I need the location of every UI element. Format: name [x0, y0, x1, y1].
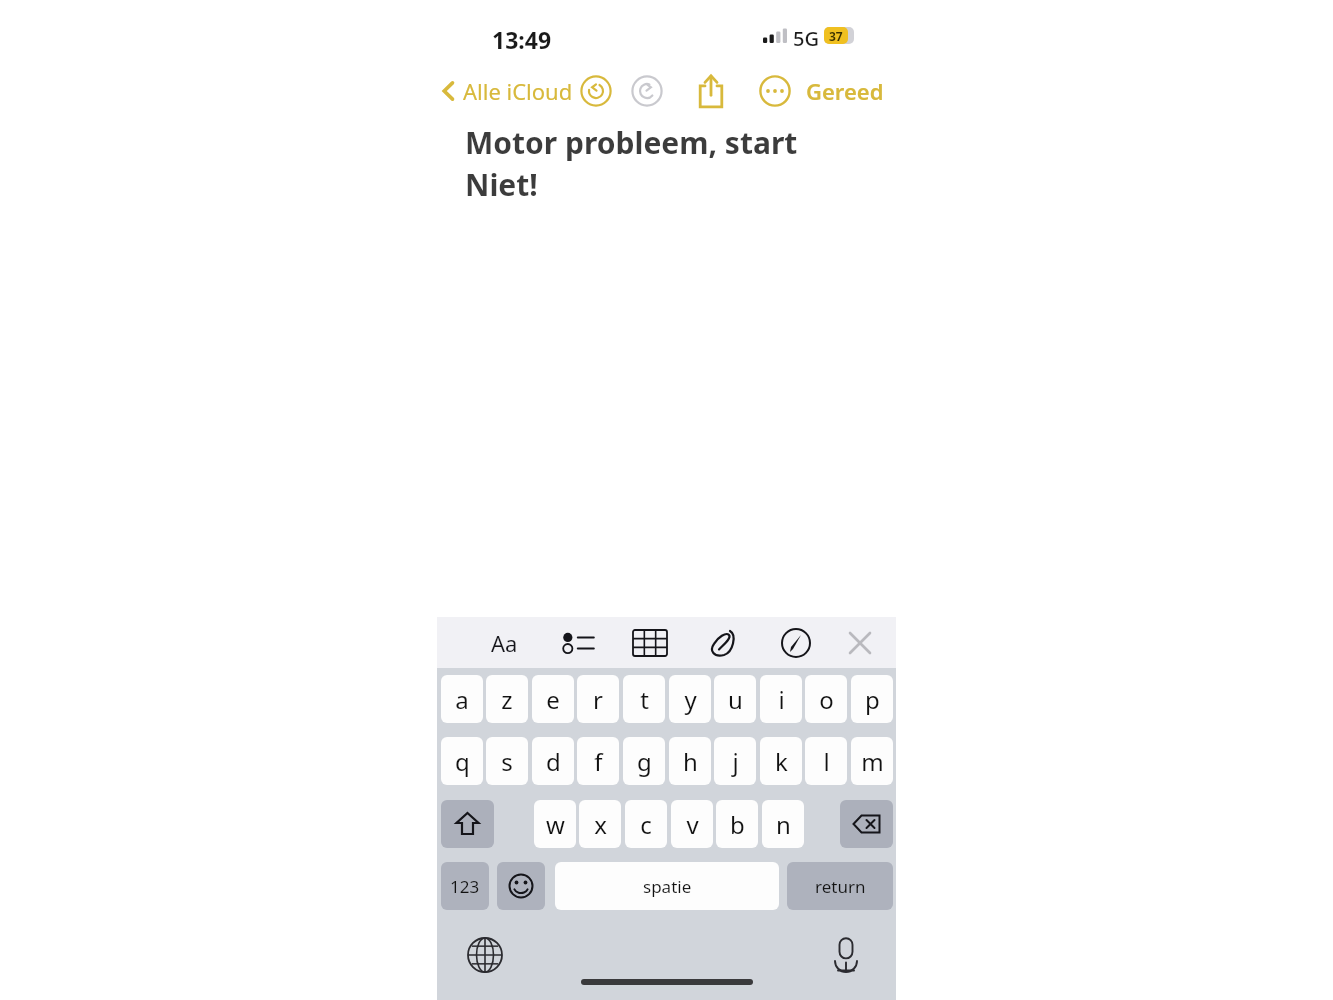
staticText: n [776, 808, 791, 841]
staticText: x [594, 808, 607, 841]
staticText: j [732, 745, 739, 778]
button[interactable]: Gereed [806, 74, 884, 108]
button[interactable]: x [579, 800, 621, 848]
button[interactable]: n [762, 800, 804, 848]
button[interactable]: r [577, 675, 619, 723]
staticText: k [775, 745, 788, 778]
staticText: e [546, 683, 560, 716]
button[interactable]: 123 [441, 862, 489, 910]
button[interactable]: Attach [700, 623, 746, 663]
button[interactable]: More [759, 75, 791, 107]
staticText: i [778, 683, 785, 716]
button[interactable]: Backspace [840, 800, 893, 848]
button[interactable]: spatie [555, 862, 779, 910]
button[interactable]: g [623, 737, 665, 785]
button[interactable]: j [714, 737, 756, 785]
button[interactable]: v [671, 800, 713, 848]
button[interactable]: y [669, 675, 711, 723]
button[interactable]: h [669, 737, 711, 785]
button[interactable]: Alle iCloud [441, 74, 573, 108]
staticText: p [865, 683, 880, 716]
staticText: h [683, 745, 698, 778]
staticText: 123 [450, 875, 480, 898]
button[interactable]: z [486, 675, 528, 723]
button[interactable]: p [851, 675, 893, 723]
staticText: y [684, 683, 697, 716]
button[interactable]: Dictation [829, 934, 863, 976]
button[interactable]: Redo [631, 75, 663, 107]
button[interactable]: d [532, 737, 574, 785]
staticText: d [546, 745, 561, 778]
staticText: f [594, 745, 603, 778]
button[interactable]: f [577, 737, 619, 785]
button[interactable]: Aa [481, 623, 527, 663]
button[interactable]: t [623, 675, 665, 723]
button[interactable]: o [805, 675, 847, 723]
button[interactable]: c [625, 800, 667, 848]
button[interactable]: l [805, 737, 847, 785]
staticText: Gereed [806, 76, 884, 106]
button[interactable]: b [716, 800, 758, 848]
staticText: s [501, 745, 513, 778]
staticText: q [455, 745, 470, 778]
button[interactable]: Undo [580, 75, 612, 107]
button[interactable]: q [441, 737, 483, 785]
staticText: u [728, 683, 743, 716]
staticText: z [501, 683, 513, 716]
staticText: Alle iCloud [463, 76, 573, 106]
button[interactable]: Emoji [497, 862, 545, 910]
button[interactable]: u [714, 675, 756, 723]
button[interactable]: m [851, 737, 893, 785]
button[interactable]: s [486, 737, 528, 785]
staticText: Motor probleem, start Niet! [465, 122, 865, 205]
button[interactable]: e [532, 675, 574, 723]
button[interactable]: k [760, 737, 802, 785]
staticText: 5G [793, 25, 819, 52]
staticText: Aa [491, 628, 518, 658]
button[interactable]: Table [627, 623, 673, 663]
staticText: v [686, 808, 699, 841]
staticText: w [546, 808, 565, 841]
staticText: m [861, 745, 884, 778]
staticText: t [640, 683, 649, 716]
staticText: 13:49 [492, 24, 552, 55]
staticText: g [637, 745, 652, 778]
staticText: r [593, 683, 603, 716]
staticText: spatie [643, 875, 692, 898]
staticText: l [823, 745, 830, 778]
staticText: o [819, 683, 834, 716]
button[interactable]: Checklist [554, 623, 600, 663]
button[interactable]: Share [696, 73, 726, 109]
button[interactable]: return [787, 862, 893, 910]
button[interactable]: Shift [441, 800, 494, 848]
staticText: return [815, 875, 866, 898]
staticText: c [640, 808, 652, 841]
button[interactable]: i [760, 675, 802, 723]
button[interactable]: Markup [773, 623, 819, 663]
button[interactable]: a [441, 675, 483, 723]
staticText: b [730, 808, 745, 841]
staticText: a [455, 683, 469, 716]
button[interactable]: Close keyboard [837, 623, 883, 663]
button[interactable]: Change keyboard [466, 936, 504, 974]
button[interactable]: w [534, 800, 576, 848]
staticText: 37 [829, 28, 843, 44]
